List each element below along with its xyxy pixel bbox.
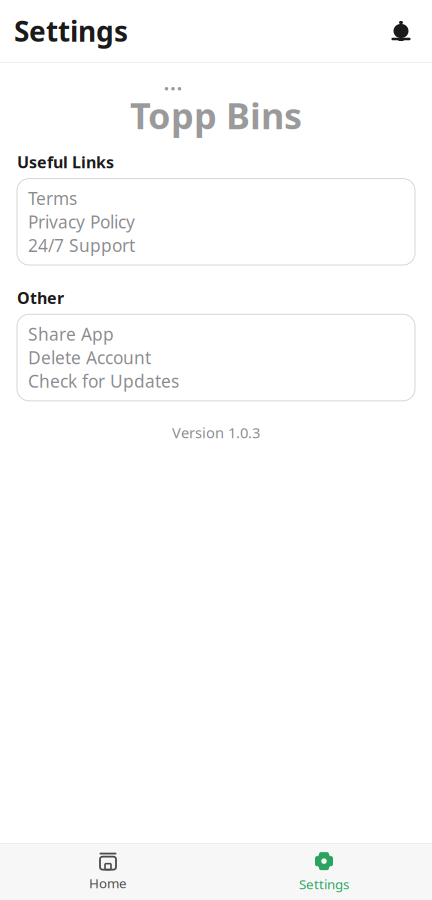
button[interactable]: Privacy Policy — [17, 210, 415, 234]
staticText: Version 1.0.3 — [172, 423, 260, 442]
staticText: Terms — [28, 187, 77, 210]
staticText: Useful Links — [17, 151, 114, 172]
staticText: Check for Updates — [28, 369, 179, 392]
staticText: Settings — [299, 875, 349, 893]
staticText: 24/7 Support — [28, 234, 135, 257]
staticText: Share App — [28, 322, 114, 345]
button[interactable]: Check for Updates — [17, 369, 415, 393]
staticText: Topp Bins — [130, 91, 302, 139]
button[interactable]: Home — [0, 843, 216, 900]
staticText: Other — [17, 287, 64, 308]
button[interactable]: Share App — [17, 322, 415, 346]
staticText: Delete Account — [28, 346, 151, 369]
button[interactable]: Settings — [216, 842, 432, 900]
button[interactable]: Notifications — [384, 14, 418, 48]
staticText: Privacy Policy — [28, 210, 135, 233]
staticText: Settings — [14, 12, 128, 50]
button[interactable]: 24/7 Support — [17, 234, 415, 257]
button[interactable]: Terms — [17, 187, 415, 210]
staticText: Home — [89, 874, 127, 892]
button[interactable]: Delete Account — [17, 346, 415, 369]
